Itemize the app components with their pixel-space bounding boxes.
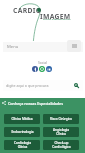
button[interactable]: Cardiologia Clínica (4, 140, 40, 150)
button[interactable]: Clínica Médica (4, 114, 40, 124)
staticText: Check-up Cardiológico (52, 141, 71, 149)
button[interactable]: digite aqui o que procura (3, 80, 83, 91)
button[interactable]: LinkedIn (46, 66, 52, 72)
button[interactable]: Endocrinologia (4, 127, 40, 137)
button[interactable]: Risco Cirúrgico (43, 114, 79, 124)
other: Search (74, 83, 79, 88)
staticText: CLÍNICA CARDIOVASCULAR (43, 18, 71, 21)
staticText: Endocrinologia (11, 130, 34, 134)
staticText: IMAGEM (40, 12, 71, 21)
button[interactable]: WhatsApp (39, 66, 45, 72)
staticText: Angiologia Clínica (53, 128, 69, 136)
staticText: Risco Cirúrgico (50, 117, 72, 121)
button[interactable]: Check-up Cardiológico (43, 140, 79, 150)
button[interactable]: Open menu (67, 40, 81, 52)
staticText: Cardiologia Clínica (14, 141, 31, 149)
staticText: CARDIO (13, 6, 42, 15)
button[interactable]: Facebook (32, 66, 38, 72)
button[interactable]: Angiologia Clínica (43, 127, 79, 137)
staticText: digite aqui o que procura (6, 83, 49, 88)
staticText: Menu (7, 44, 19, 50)
staticText: Social (0, 60, 85, 65)
staticText: Clínica Médica (11, 117, 33, 121)
button[interactable]: Menu (3, 42, 83, 52)
staticText: Conheça nossas Especialidades (8, 101, 63, 106)
